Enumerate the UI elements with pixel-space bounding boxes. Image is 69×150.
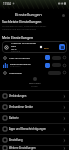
staticText: Verbundene Geräte — [9, 105, 33, 109]
button[interactable]: Apps und Benachrichtigungen — [0, 124, 69, 134]
staticText: Netz und Internet — [9, 56, 30, 59]
button[interactable]: Ladestufen — [0, 69, 69, 76]
staticText: TV & Wi-Fi — [10, 65, 21, 68]
staticText: Mein Einstellungen — [2, 35, 34, 40]
button[interactable]: Profil — [62, 14, 65, 17]
staticText: Apps und Benachrichtigungen — [9, 127, 46, 131]
staticText: Einstellung — [9, 138, 23, 142]
staticText: 80% — [44, 46, 49, 49]
button[interactable]: Verbindungen — [0, 91, 69, 101]
staticText: Weitere Einstellungen — [9, 146, 36, 150]
staticText: Nutzung und den Einstellungen — [2, 28, 37, 31]
button[interactable]: Netz und Internet — [0, 54, 69, 61]
staticText: Vorschläge für dich, basierend auf deine… — [2, 25, 47, 28]
staticText: Bedienoberfläche — [10, 62, 31, 65]
staticText: Suchleiste Einstellungen — [2, 19, 42, 24]
staticText: 45 % — [11, 47, 17, 50]
staticText: Dein Konto — [29, 82, 41, 85]
staticText: Einstellungen — [15, 12, 42, 18]
staticText: Nutzung und Energie wird — [11, 41, 39, 47]
button[interactable]: Nutzung und Energie wird — [2, 41, 67, 53]
button[interactable]: Batterie — [0, 113, 69, 123]
button[interactable]: Weitere Einstellungen — [0, 146, 69, 150]
staticText: 17:04 — [3, 2, 11, 6]
staticText: Standard — [11, 50, 20, 53]
staticText: Google — [31, 85, 38, 88]
button[interactable]: Bedienoberfläche — [0, 61, 69, 69]
button[interactable]: Verbundene Geräte — [0, 102, 69, 112]
button[interactable]: Einstellung — [0, 135, 69, 145]
staticText: Verbindungen — [9, 94, 27, 98]
staticText: Ladestufen — [9, 71, 23, 74]
staticText: Batterie — [9, 116, 19, 120]
